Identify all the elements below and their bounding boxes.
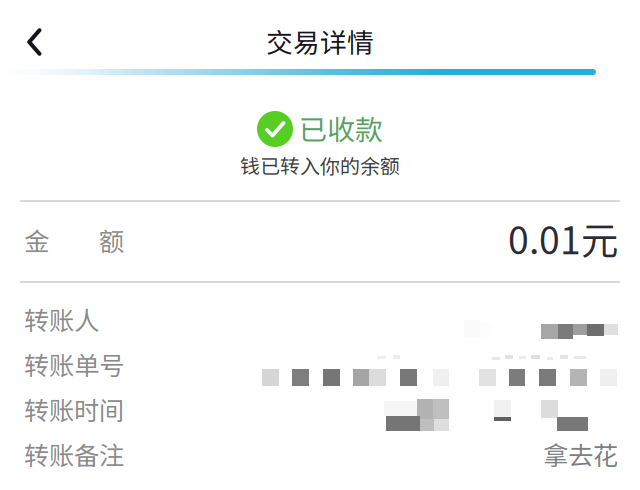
staticText: 交易详情 [266,22,374,60]
button[interactable]: Back [0,14,67,68]
staticText: 0.01元 [508,211,618,265]
staticText: 拿去花 [543,436,618,472]
staticText: 已收款 [299,108,383,148]
staticText: 转账人 [24,301,99,337]
staticText: 金 额 [24,222,124,258]
staticText: 转账单号 [24,346,124,382]
staticText: 钱已转入你的余额 [240,150,400,179]
staticText: 转账时间 [24,391,124,427]
staticText: 转账备注 [24,436,124,472]
